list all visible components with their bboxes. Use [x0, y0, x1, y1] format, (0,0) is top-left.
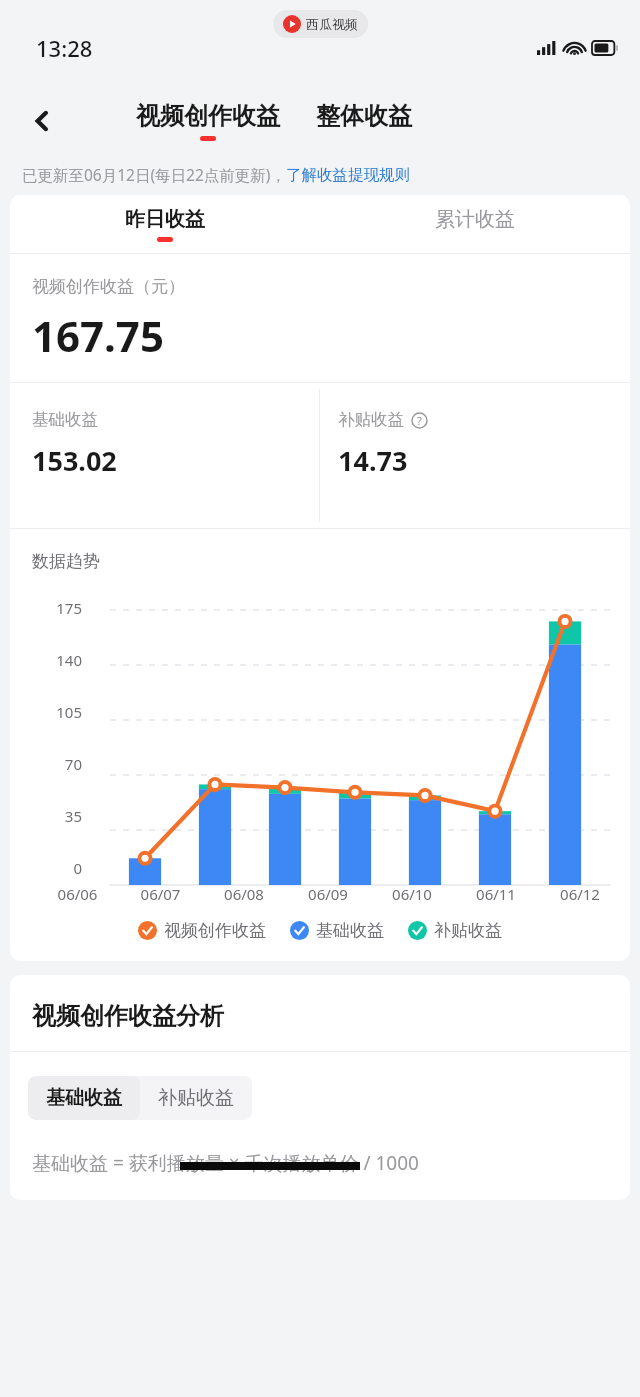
button[interactable]: 基础收益 — [28, 1076, 140, 1120]
button[interactable]: 视频创作收益 — [138, 914, 266, 947]
staticText: 06/09 — [286, 884, 370, 904]
staticText: 0 — [10, 858, 82, 878]
staticText: ? — [417, 413, 422, 428]
staticText: 175 — [10, 598, 82, 618]
staticText: 13:28 — [36, 33, 93, 63]
staticText: 105 — [10, 702, 82, 722]
staticText: 视频创作收益分析 — [32, 1001, 224, 1031]
button[interactable]: 了解收益提现规则 — [286, 165, 410, 185]
button[interactable]: Help — [410, 411, 428, 429]
staticText: 已更新至06月12日(每日22点前更新)， — [22, 164, 286, 185]
staticText: 基础收益 — [46, 1086, 122, 1110]
staticText: 累计收益 — [435, 207, 515, 232]
staticText: 西瓜视频 — [306, 16, 358, 32]
staticText: 14.73 — [338, 442, 408, 479]
button[interactable]: 西瓜视频 — [273, 10, 368, 38]
staticText: 06/10 — [370, 884, 454, 904]
button[interactable]: 整体收益 — [312, 99, 416, 143]
staticText: 补贴收益 — [338, 409, 404, 430]
staticText: 视频创作收益 — [136, 101, 280, 131]
staticText: 06/07 — [119, 884, 202, 904]
staticText: 06/12 — [538, 884, 622, 904]
staticText: 140 — [10, 650, 82, 670]
staticText: 35 — [10, 806, 82, 826]
staticText: 基础收益 — [32, 409, 98, 430]
staticText: 整体收益 — [316, 101, 412, 131]
staticText: 基础收益 = 获利播放量 × 千次播放单价 / 1000 — [32, 1150, 419, 1176]
staticText: 153.02 — [32, 442, 117, 479]
staticText: 视频创作收益 — [164, 920, 266, 941]
staticText: 06/11 — [454, 884, 538, 904]
button[interactable]: Back — [18, 97, 66, 145]
staticText: 数据趋势 — [32, 551, 100, 572]
button[interactable]: 补贴收益 — [140, 1076, 252, 1120]
button[interactable]: 基础收益 — [290, 914, 384, 947]
staticText: 06/08 — [202, 884, 286, 904]
staticText: 06/06 — [36, 884, 119, 904]
staticText: 视频创作收益（元） — [32, 276, 185, 297]
staticText: 了解收益提现规则 — [286, 165, 410, 185]
staticText: 补贴收益 — [158, 1086, 234, 1110]
button[interactable]: 补贴收益 — [408, 914, 502, 947]
staticText: 昨日收益 — [125, 207, 205, 232]
staticText: 70 — [10, 754, 82, 774]
button[interactable]: 累计收益 — [320, 195, 630, 253]
staticText: 167.75 — [32, 307, 164, 364]
button[interactable]: 昨日收益 — [10, 195, 320, 253]
staticText: 基础收益 — [316, 920, 384, 941]
button[interactable]: 视频创作收益 — [132, 101, 284, 141]
staticText: 补贴收益 — [434, 920, 502, 941]
